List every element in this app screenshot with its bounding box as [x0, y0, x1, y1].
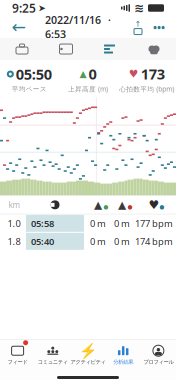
- staticText: ♥: [148, 198, 159, 212]
- button[interactable]: More: [148, 16, 170, 38]
- staticText: 心拍数平均 (bpm): [119, 84, 174, 93]
- button[interactable]: 1.8: [0, 232, 176, 250]
- staticText: 9:25: [12, 0, 36, 16]
- staticText: 分析結果: [113, 359, 133, 365]
- staticText: 1.8: [7, 235, 20, 247]
- staticText: 0 m: [90, 235, 106, 247]
- staticText: ▲: [79, 68, 86, 79]
- button[interactable]: Charts: [88, 38, 132, 60]
- button[interactable]: プロフィール: [141, 340, 176, 370]
- staticText: 05:40: [31, 235, 54, 247]
- staticText: 0 m: [114, 235, 130, 247]
- button[interactable]: 分析結果: [106, 340, 141, 370]
- staticText: 0 m: [114, 217, 130, 229]
- staticText: 1.0: [7, 217, 20, 229]
- staticText: ▲: [118, 199, 126, 211]
- staticText: 上昇高度 (m): [68, 84, 108, 93]
- staticText: km: [8, 199, 19, 210]
- button[interactable]: Share: [128, 16, 148, 38]
- staticText: ≋: [134, 1, 144, 15]
- staticText: ←: [11, 17, 26, 37]
- staticText: 0 m: [90, 217, 106, 229]
- staticText: ⚡: [79, 342, 97, 359]
- staticText: 05:58: [31, 217, 54, 229]
- button[interactable]: Back: [6, 16, 32, 38]
- staticText: フィード: [8, 359, 28, 365]
- button[interactable]: 1.0: [0, 214, 176, 232]
- staticText: 平均ペース: [12, 85, 47, 93]
- staticText: 2022/11/16 ・ 6:53: [45, 13, 115, 41]
- button[interactable]: コミュニティ: [35, 340, 70, 370]
- button[interactable]: Photos: [44, 38, 88, 60]
- staticText: ↑: [134, 19, 141, 29]
- staticText: 0: [88, 64, 96, 83]
- button[interactable]: ⚡: [70, 340, 106, 370]
- staticText: アクティビティ: [70, 359, 105, 365]
- staticText: 174 bpm: [135, 235, 173, 247]
- staticText: コミュニティ: [38, 359, 68, 365]
- staticText: •••: [153, 20, 165, 34]
- staticText: ▲: [94, 199, 102, 211]
- staticText: 05:50: [16, 64, 52, 84]
- staticText: 177 bpm: [135, 217, 173, 229]
- button[interactable]: Gear: [0, 38, 44, 60]
- staticText: ♥: [129, 68, 139, 80]
- staticText: 173: [141, 64, 165, 83]
- button[interactable]: フィード: [0, 340, 35, 370]
- staticText: ➤: [38, 3, 46, 13]
- button[interactable]: Health: [132, 38, 176, 60]
- staticText: プロフィール: [143, 359, 173, 365]
